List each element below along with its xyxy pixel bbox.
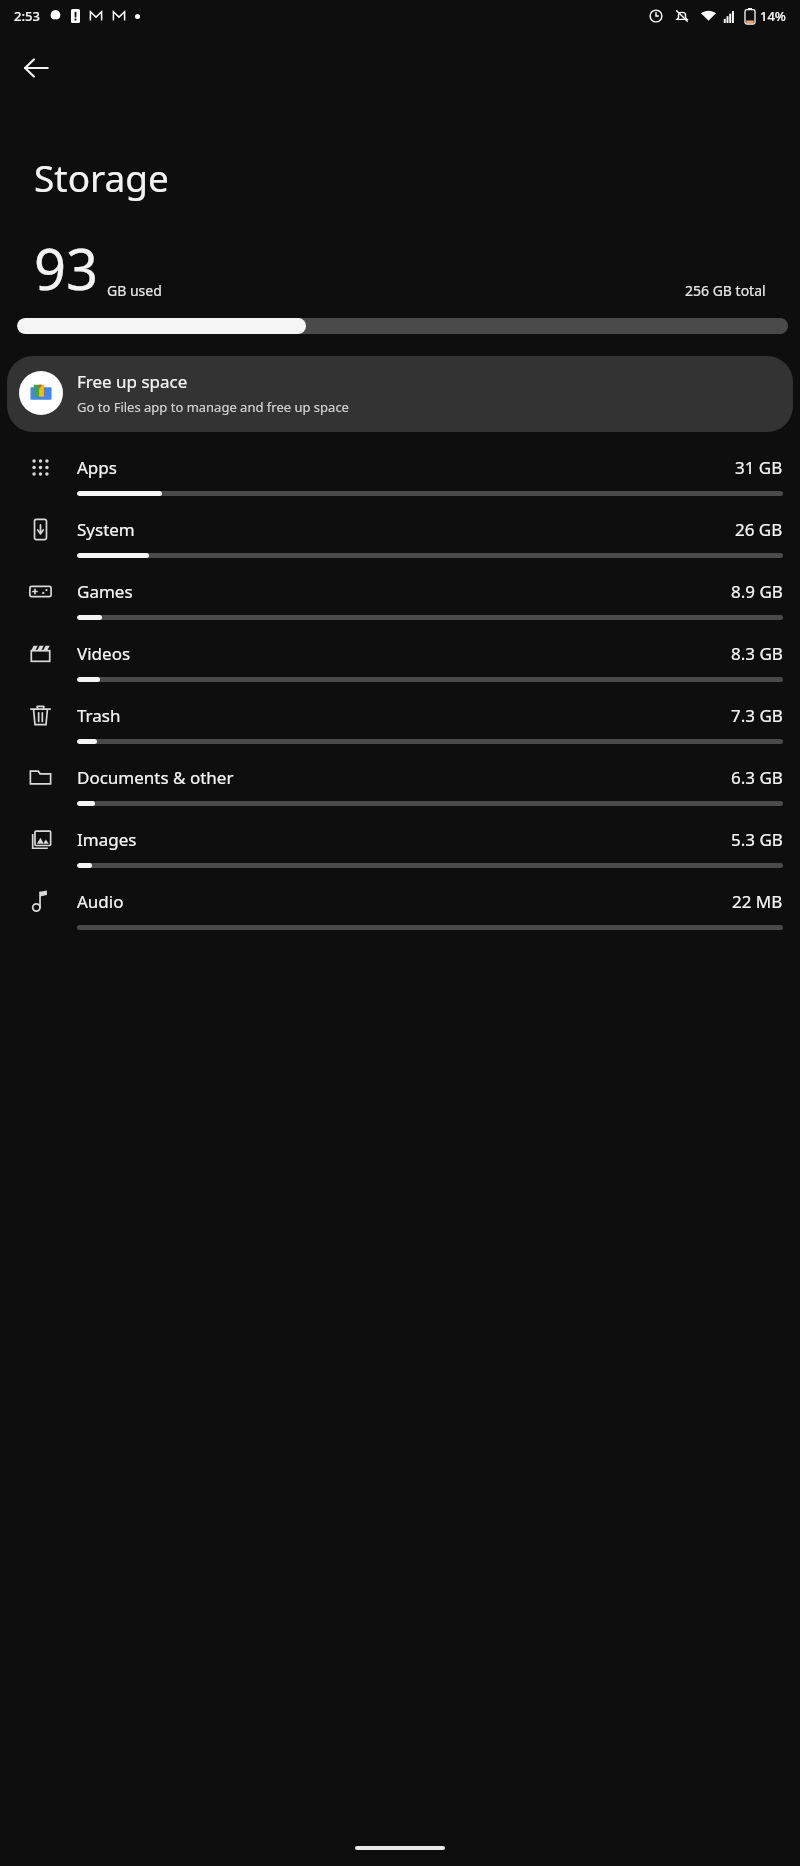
staticText: 5.3 GB xyxy=(731,828,783,851)
staticText: Apps xyxy=(77,456,117,479)
staticText: Trash xyxy=(77,704,121,727)
staticText: 31 GB xyxy=(735,456,783,479)
staticText: 256 GB total xyxy=(685,281,766,300)
staticText: 7.3 GB xyxy=(731,704,783,727)
staticText: 22 MB xyxy=(732,890,783,913)
staticText: 26 GB xyxy=(735,518,783,541)
button[interactable]: Audio xyxy=(0,880,800,942)
staticText: 8.9 GB xyxy=(731,580,783,603)
button[interactable]: Back xyxy=(8,40,64,96)
staticText: Games xyxy=(77,580,133,603)
button[interactable]: Trash xyxy=(0,694,800,756)
staticText: System xyxy=(77,518,135,541)
staticText: 8.3 GB xyxy=(731,642,783,665)
staticText: Go to Files app to manage and free up sp… xyxy=(77,398,349,416)
staticText: Images xyxy=(77,828,137,851)
staticText: Audio xyxy=(77,890,124,913)
button[interactable]: Games xyxy=(0,570,800,632)
button[interactable]: Videos xyxy=(0,632,800,694)
button[interactable]: Documents & other xyxy=(0,756,800,818)
button[interactable]: System xyxy=(0,508,800,570)
staticText: 93 xyxy=(34,230,99,306)
staticText: Storage xyxy=(34,152,169,202)
button[interactable]: Apps xyxy=(0,446,800,508)
button[interactable]: Free up space xyxy=(7,356,793,432)
button[interactable]: Images xyxy=(0,818,800,880)
staticText: GB used xyxy=(107,281,162,300)
staticText: 2:53 xyxy=(14,7,40,25)
staticText: 14% xyxy=(760,7,786,25)
staticText: Free up space xyxy=(77,370,188,393)
staticText: 6.3 GB xyxy=(731,766,783,789)
staticText: Documents & other xyxy=(77,766,234,789)
staticText: Videos xyxy=(77,642,131,665)
